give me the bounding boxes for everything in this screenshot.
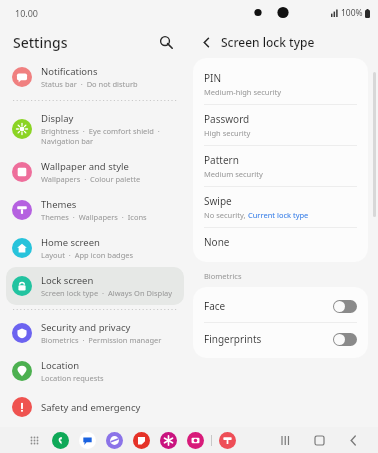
staticText: Wallpapers · Colour palette [41, 174, 141, 184]
staticText: Medium-high security [204, 87, 282, 97]
button[interactable]: Apps [25, 431, 43, 449]
button[interactable]: Wallpaper and style [6, 153, 184, 191]
button[interactable]: Display [6, 105, 184, 153]
staticText: Pattern [204, 153, 239, 167]
button[interactable]: PIN [193, 64, 368, 104]
button[interactable]: Back [342, 429, 364, 451]
button[interactable]: Face [193, 290, 368, 322]
staticText: Themes · Wallpapers · Icons [41, 212, 147, 222]
button[interactable]: Internet [106, 432, 123, 449]
staticText: Password [204, 112, 250, 126]
button[interactable]: Messages [79, 432, 96, 449]
button[interactable]: Home [308, 429, 330, 451]
staticText: Home screen [41, 236, 100, 249]
button[interactable]: None [193, 228, 368, 256]
button[interactable]: Camera [187, 432, 204, 449]
staticText: Location requests [41, 373, 104, 383]
button[interactable]: Back [194, 30, 218, 54]
staticText: Location [41, 359, 80, 372]
staticText: Medium security [204, 169, 263, 179]
button[interactable]: Pattern [193, 146, 368, 186]
button[interactable]: Fingerprints [193, 323, 368, 355]
button[interactable]: Safety and emergency [6, 390, 184, 424]
button[interactable]: Phone [52, 432, 69, 449]
staticText: No security, [204, 210, 248, 220]
staticText: Themes [41, 198, 77, 211]
button[interactable]: Swipe [193, 187, 368, 227]
button[interactable]: Notifications [6, 58, 184, 96]
staticText: Navigation bar [41, 136, 94, 146]
staticText: Screen lock type [221, 34, 315, 50]
staticText: High security [204, 128, 251, 138]
button[interactable]: Themes [219, 432, 236, 449]
staticText: PIN [204, 71, 222, 85]
staticText: None [204, 235, 230, 249]
button[interactable]: Notes [133, 432, 150, 449]
staticText: Notifications [41, 65, 98, 78]
staticText: Fingerprints [204, 332, 333, 346]
staticText: Wallpaper and style [41, 160, 129, 173]
staticText: Biometrics · Permission manager [41, 335, 162, 345]
button[interactable]: Password [193, 105, 368, 145]
button[interactable]: Themes [6, 191, 184, 229]
staticText: Layout · App icon badges [41, 250, 134, 260]
staticText: Swipe [204, 194, 232, 208]
staticText: Current lock type [248, 210, 309, 220]
staticText: Face [204, 299, 333, 313]
staticText: Settings [13, 33, 68, 52]
staticText: 100% [341, 7, 363, 19]
staticText: Lock screen [41, 274, 94, 287]
button[interactable]: Recents [274, 429, 296, 451]
staticText: Safety and emergency [41, 401, 141, 414]
staticText: Security and privacy [41, 321, 131, 334]
button[interactable]: Search [154, 30, 178, 54]
button[interactable]: Security and privacy [6, 314, 184, 352]
staticText: Brightness · Eye comfort shield · [41, 126, 160, 136]
staticText: Display [41, 112, 74, 125]
button[interactable]: Home screen [6, 229, 184, 267]
button[interactable]: Gallery [160, 432, 177, 449]
staticText: Status bar · Do not disturb [41, 79, 138, 89]
button[interactable]: Lock screen [6, 267, 184, 305]
staticText: Screen lock type · Always On Display [41, 288, 173, 298]
button[interactable]: Location [6, 352, 184, 390]
staticText: Biometrics [204, 271, 242, 281]
staticText: 10.00 [15, 7, 39, 19]
